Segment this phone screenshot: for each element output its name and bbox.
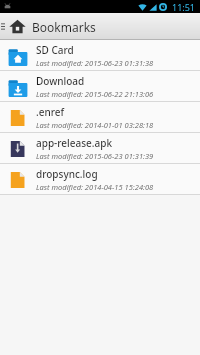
staticText: Last modified: 2015-06-22 21:13:06 [36, 89, 154, 99]
staticText: Last modified: 2014-01-01 03:28:18 [36, 120, 154, 130]
staticText: Last modified: 2015-06-23 01:31:39 [36, 151, 154, 161]
button[interactable]: Open navigation drawer [0, 13, 5, 39]
button[interactable]: app-release.apk [0, 133, 200, 163]
button[interactable]: .enref [0, 102, 200, 132]
button[interactable]: dropsync.log [0, 164, 200, 194]
staticText: .enref [36, 105, 65, 119]
staticText: Last modified: 2014-04-15 15:24:08 [36, 182, 154, 192]
staticText: SD Card [36, 43, 74, 57]
staticText: Last modified: 2015-06-23 01:31:38 [36, 58, 154, 68]
other: Home [9, 18, 26, 35]
staticText: Download [36, 74, 85, 88]
staticText: 11:51 [172, 1, 196, 13]
staticText: Bookmarks [32, 19, 96, 35]
staticText: app-release.apk [36, 136, 113, 150]
button[interactable]: SD Card [0, 40, 200, 70]
staticText: dropsync.log [36, 167, 98, 181]
button[interactable]: Home [5, 13, 98, 39]
button[interactable]: Download [0, 71, 200, 101]
